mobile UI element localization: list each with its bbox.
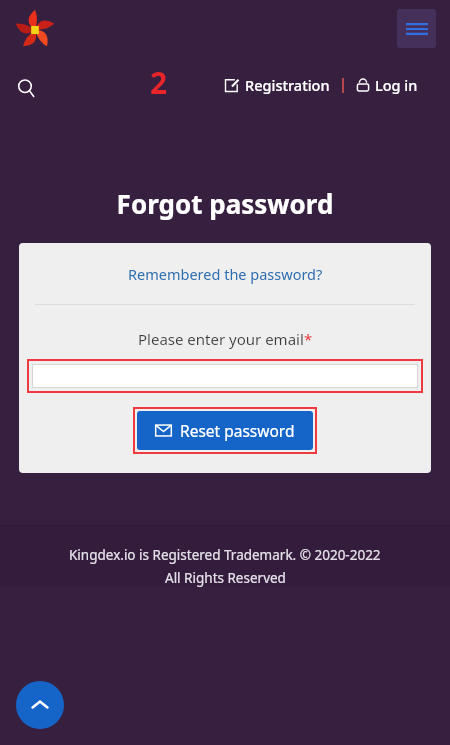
button[interactable]: Email input <box>32 364 418 388</box>
staticText: Log in <box>375 75 418 95</box>
button[interactable]: Scroll to top <box>16 681 64 729</box>
staticText: Remembered the password? <box>128 264 323 284</box>
staticText: Reset password <box>180 420 295 441</box>
button[interactable]: Reset password <box>137 411 313 450</box>
staticText: Forgot password <box>0 186 450 221</box>
button[interactable]: Log in <box>356 75 418 95</box>
staticText: Kingdex.io is Registered Trademark. © 20… <box>69 546 381 564</box>
button[interactable]: Registration <box>224 75 330 95</box>
button[interactable]: Menu <box>397 9 436 48</box>
button[interactable]: Kingdex home <box>13 8 57 52</box>
staticText: Please enter your email <box>138 329 304 349</box>
staticText: * <box>304 329 313 349</box>
staticText: Registration <box>245 75 330 95</box>
button[interactable]: Search <box>12 74 40 102</box>
staticText: All Rights Reserved <box>165 569 286 587</box>
staticText: 2 <box>150 62 168 103</box>
button[interactable]: Remembered the password? <box>128 264 323 284</box>
